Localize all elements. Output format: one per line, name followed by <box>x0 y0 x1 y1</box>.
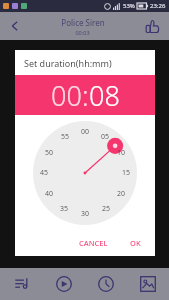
staticText: 00 <box>81 127 90 137</box>
staticText: 30 <box>81 209 90 219</box>
staticText: Set duration(hh:mm) <box>24 57 112 69</box>
staticText: 25 <box>102 204 111 214</box>
staticText: 20 <box>117 189 126 199</box>
button[interactable]: Timer <box>85 268 127 300</box>
staticText: 00:03 <box>75 29 90 36</box>
button[interactable]: Like <box>135 12 169 40</box>
staticText: 15 <box>122 168 131 178</box>
staticText: CANCEL <box>79 238 108 248</box>
staticText: 45 <box>40 168 49 178</box>
button[interactable]: 00 <box>51 77 82 114</box>
staticText: 10 <box>117 148 126 158</box>
button[interactable]: CANCEL <box>73 234 114 252</box>
staticText: 40 <box>45 189 54 199</box>
button[interactable]: Back <box>0 12 30 40</box>
staticText: : <box>82 77 89 114</box>
staticText: 50 <box>45 148 54 158</box>
staticText: 23:26 <box>150 2 166 10</box>
button[interactable]: 08 <box>89 77 120 114</box>
staticText: Police Siren <box>61 17 105 28</box>
staticText: 05 <box>101 132 110 142</box>
button[interactable]: Play <box>43 268 85 300</box>
staticText: 55 <box>61 132 70 142</box>
staticText: OK <box>130 238 141 248</box>
button[interactable]: Image <box>127 268 169 300</box>
button[interactable]: Playlist <box>0 268 43 300</box>
staticText: 35 <box>60 204 69 214</box>
staticText: 53% <box>123 2 135 10</box>
button[interactable]: OK <box>124 234 147 252</box>
